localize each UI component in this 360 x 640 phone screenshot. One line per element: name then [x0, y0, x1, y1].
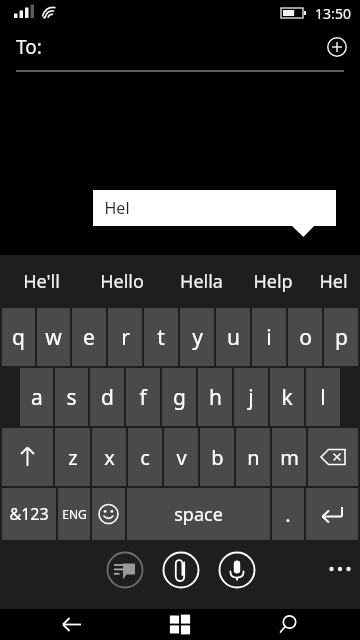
staticText: f — [139, 383, 147, 412]
button[interactable]: Back — [48, 609, 96, 640]
button[interactable]: Start — [156, 609, 204, 640]
staticText: r — [121, 323, 130, 352]
staticText: h — [209, 383, 222, 412]
button[interactable]: Search — [264, 609, 312, 640]
staticText: He'll — [23, 269, 60, 294]
staticText: y — [192, 323, 203, 352]
staticText: x — [104, 444, 115, 471]
staticText: o — [299, 323, 312, 352]
staticText: p — [335, 323, 348, 352]
button[interactable]: Voice input — [217, 550, 257, 590]
staticText: a — [31, 383, 43, 412]
button[interactable]: Hel — [93, 190, 336, 226]
button[interactable]: &123 — [2, 488, 56, 540]
button[interactable]: SMS — [105, 550, 145, 590]
button[interactable]: Hel — [306, 255, 360, 307]
button[interactable]: i — [252, 308, 286, 366]
staticText: t — [157, 323, 165, 352]
button[interactable]: b — [200, 428, 234, 486]
button[interactable]: q — [2, 308, 35, 366]
staticText: j — [248, 383, 254, 412]
button[interactable]: x — [92, 428, 126, 486]
staticText: z — [68, 444, 78, 471]
staticText: g — [173, 383, 186, 412]
staticText: Hel — [319, 269, 348, 294]
button[interactable]: More options — [320, 554, 360, 584]
button[interactable]: o — [288, 308, 322, 366]
button[interactable]: f — [126, 368, 160, 426]
staticText: q — [12, 323, 25, 352]
staticText: Help — [253, 269, 293, 294]
button[interactable]: Backspace — [308, 428, 358, 486]
staticText: u — [227, 323, 240, 352]
button[interactable]: j — [234, 368, 268, 426]
staticText: space — [174, 502, 223, 527]
button[interactable]: To: — [0, 26, 360, 72]
button[interactable]: ENG — [58, 488, 90, 540]
staticText: k — [281, 383, 293, 412]
button[interactable]: c — [128, 428, 162, 486]
staticText: w — [45, 323, 62, 352]
staticText: e — [83, 323, 95, 352]
button[interactable]: z — [55, 428, 90, 486]
button[interactable]: Emoji — [92, 488, 125, 540]
button[interactable]: w — [37, 308, 70, 366]
button[interactable]: g — [162, 368, 196, 426]
staticText: ENG — [62, 506, 87, 522]
button[interactable]: u — [216, 308, 250, 366]
staticText: v — [176, 444, 187, 471]
button[interactable]: e — [72, 308, 106, 366]
button[interactable]: Attach — [161, 550, 201, 590]
button[interactable]: Shift — [2, 428, 53, 486]
button[interactable]: He'll — [0, 255, 82, 307]
button[interactable]: t — [144, 308, 178, 366]
button[interactable]: space — [127, 488, 270, 540]
button[interactable]: . — [272, 488, 304, 540]
button[interactable]: n — [236, 428, 270, 486]
button[interactable]: k — [270, 368, 304, 426]
button[interactable]: v — [164, 428, 198, 486]
staticText: i — [266, 323, 272, 352]
button[interactable]: y — [180, 308, 214, 366]
staticText: Hello — [100, 269, 144, 294]
button[interactable]: d — [90, 368, 124, 426]
button[interactable]: a — [20, 368, 53, 426]
button[interactable]: l — [306, 368, 340, 426]
staticText: m — [280, 444, 299, 471]
staticText: &123 — [9, 503, 49, 525]
button[interactable]: Enter — [306, 488, 358, 540]
button[interactable]: m — [272, 428, 306, 486]
staticText: n — [247, 444, 260, 471]
button[interactable]: Help — [240, 255, 306, 307]
button[interactable]: Add recipient — [322, 32, 352, 62]
staticText: s — [66, 383, 77, 412]
staticText: b — [211, 444, 224, 471]
staticText: To: — [16, 34, 42, 60]
staticText: 13:50 — [315, 4, 351, 23]
button[interactable]: Hella — [162, 255, 240, 307]
staticText: Hella — [180, 269, 223, 294]
button[interactable]: s — [55, 368, 88, 426]
button[interactable]: h — [198, 368, 232, 426]
button[interactable]: p — [324, 308, 358, 366]
staticText: l — [320, 383, 326, 412]
staticText: . — [285, 501, 291, 528]
staticText: d — [101, 383, 114, 412]
button[interactable]: Hello — [82, 255, 162, 307]
button[interactable]: r — [108, 308, 142, 366]
staticText: Hel — [104, 197, 130, 219]
staticText: c — [140, 444, 150, 471]
